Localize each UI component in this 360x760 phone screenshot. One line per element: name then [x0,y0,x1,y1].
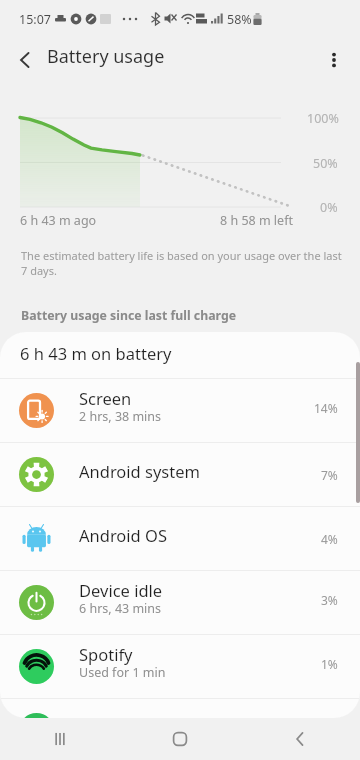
staticText: 7% [321,467,338,483]
staticText: 2 hrs, 38 mins [79,408,162,425]
staticText: 100% [307,110,339,127]
button[interactable]: Back [240,718,360,760]
staticText: Android OS [79,524,167,546]
staticText: 6 h 43 m on battery [20,342,172,364]
staticText: Spotify [79,643,133,665]
button[interactable]: Home [120,718,240,760]
staticText: 6 hrs, 43 mins [79,600,162,617]
button[interactable]: More options [314,40,354,80]
staticText: Used for 1 min [79,664,166,681]
button[interactable]: Android system [0,443,360,506]
staticText: 1% [321,656,338,672]
staticText: Screen [79,387,132,409]
staticText: 8 h 58 m left [220,212,293,229]
staticText: 4% [321,531,338,547]
staticText: Device idle [79,579,163,601]
staticText: The estimated battery life is based on y… [21,248,342,278]
button[interactable]: Android OS [0,507,360,570]
staticText: Battery usage [47,44,165,69]
staticText: Android system [79,460,200,482]
staticText: Battery usage since last full charge [21,307,237,324]
staticText: 3% [321,592,338,608]
button[interactable]: Screen [0,379,360,442]
staticText: 15:07 [19,11,51,28]
staticText: 6 h 43 m ago [20,212,97,229]
staticText: 0% [320,199,338,216]
staticText: 50% [313,155,338,172]
button[interactable]: Back [5,40,45,80]
button[interactable]: Device idle [0,571,360,634]
staticText: 14% [314,400,338,416]
button[interactable]: Confetti ball [0,699,360,718]
button[interactable]: Spotify [0,635,360,698]
button[interactable]: Recent apps [0,718,120,760]
staticText: 58% [227,11,252,28]
